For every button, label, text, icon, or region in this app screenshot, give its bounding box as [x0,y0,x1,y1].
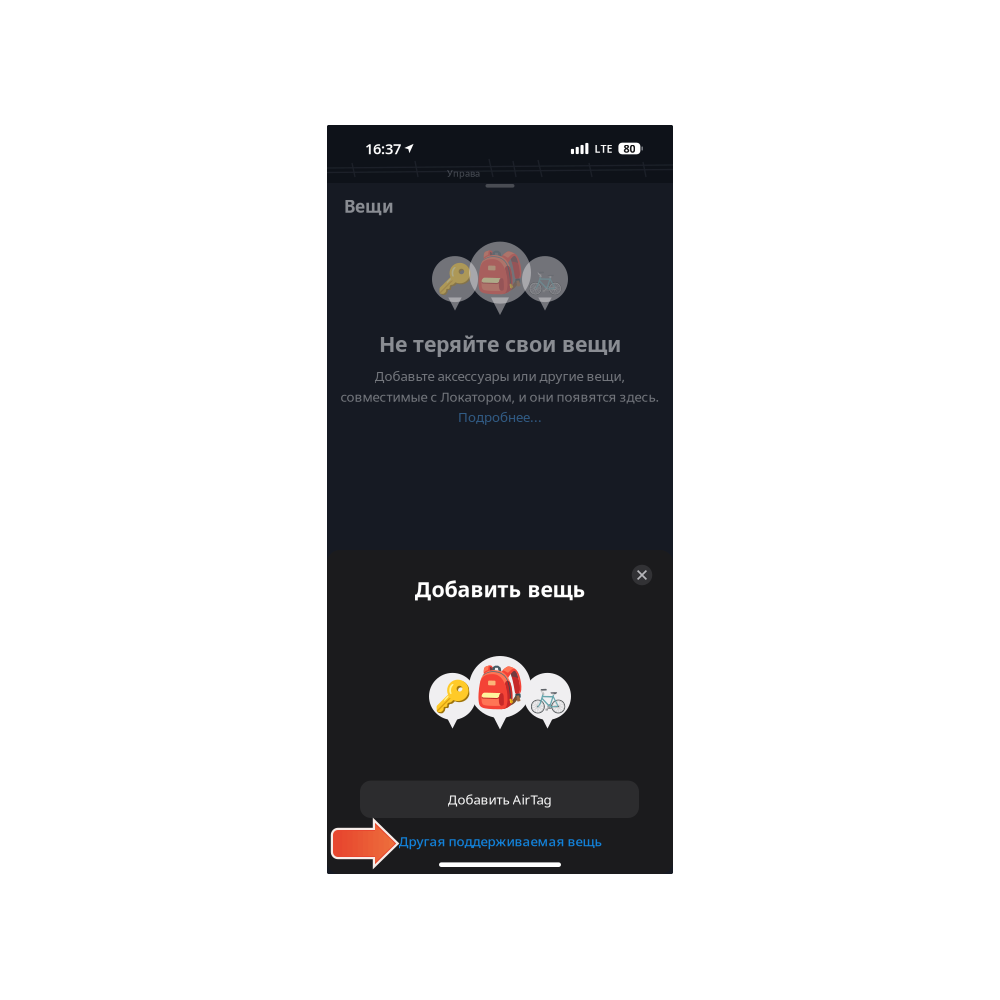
staticText: 🎒 [475,250,525,295]
button[interactable]: Добавить AirTag [360,781,639,818]
staticText: 🎒 [475,664,525,710]
staticText: Не теряйте свои вещи [379,330,621,358]
staticText: 🚲 [528,679,566,714]
staticText: 🚲 [526,262,563,296]
staticText: Вещи [344,195,394,218]
button[interactable]: Закрыть [625,572,659,606]
staticText: 🔑 [433,679,471,714]
staticText: LTE [594,141,612,156]
staticText: 80 [623,141,635,156]
button[interactable]: Другая поддерживаемая вещь [347,828,653,854]
staticText: Управа [447,167,480,179]
button[interactable]: Подробнее... [458,409,542,424]
staticText: Другая поддерживаемая вещь [398,832,601,850]
staticText: Добавить вещь [414,575,585,603]
staticText: 🔑 [436,262,473,296]
staticText: Добавить AirTag [447,790,551,808]
staticText: Подробнее... [458,408,542,426]
staticText: совместимые с Локатором, и они появятся … [340,388,659,405]
staticText: 16:37 [365,139,401,158]
staticText: Добавьте аксессуары или другие вещи, [374,367,625,385]
